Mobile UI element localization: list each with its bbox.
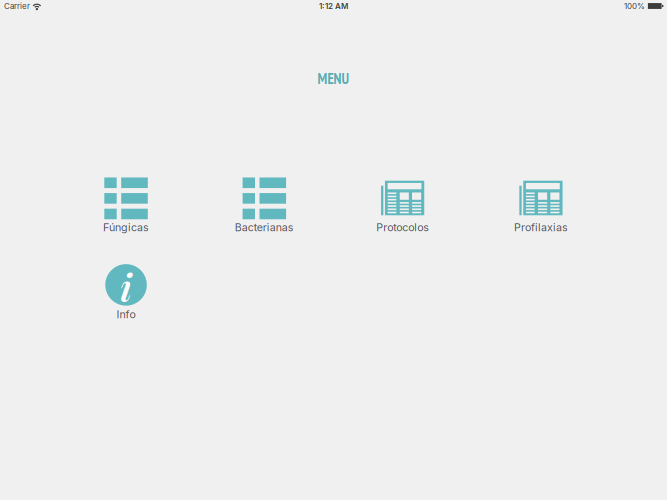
button[interactable]: MENU bbox=[317, 69, 349, 88]
staticText: 100% bbox=[624, 1, 645, 11]
staticText: Info bbox=[116, 308, 135, 321]
staticText: Carrier bbox=[4, 1, 30, 11]
button[interactable]: Profilaxias bbox=[472, 177, 610, 234]
staticText: MENU bbox=[317, 69, 349, 88]
staticText: Bacterianas bbox=[235, 221, 294, 234]
staticText: 1:12 AM bbox=[319, 1, 348, 11]
staticText: Protocolos bbox=[376, 221, 429, 234]
button[interactable]: Fúngicas bbox=[57, 177, 195, 234]
staticText: Fúngicas bbox=[103, 221, 149, 234]
button[interactable]: Bacterianas bbox=[195, 177, 333, 234]
button[interactable]: i bbox=[57, 264, 195, 321]
staticText: i bbox=[120, 261, 132, 311]
staticText: Profilaxias bbox=[514, 221, 568, 234]
button[interactable]: Protocolos bbox=[333, 177, 472, 234]
